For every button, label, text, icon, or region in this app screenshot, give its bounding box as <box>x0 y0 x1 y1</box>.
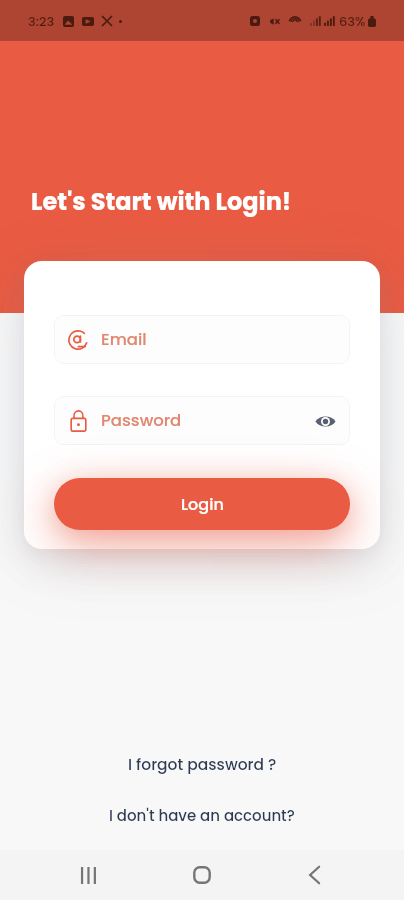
button[interactable]: Email <box>54 315 350 364</box>
button[interactable]: I forgot password ? <box>0 748 404 782</box>
button[interactable]: I don't have an account? <box>0 798 404 832</box>
staticText: I don't have an account? <box>109 805 295 826</box>
staticText: Login <box>181 493 224 515</box>
button[interactable]: Show password <box>310 406 340 436</box>
staticText: 3:23 <box>28 12 55 30</box>
button[interactable]: Login <box>54 478 350 530</box>
staticText: 63% <box>339 12 366 30</box>
staticText: Let's Start with Login! <box>31 185 292 219</box>
staticText: Email <box>101 328 147 351</box>
button[interactable]: Home <box>174 850 230 900</box>
button[interactable]: Back <box>286 850 342 900</box>
staticText: I forgot password ? <box>128 754 277 776</box>
staticText: Password <box>101 409 182 432</box>
button[interactable]: Recent apps <box>60 850 116 900</box>
button[interactable]: Password <box>54 396 350 445</box>
